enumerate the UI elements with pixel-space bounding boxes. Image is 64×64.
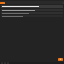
button[interactable] <box>1 5 63 8</box>
button[interactable] <box>1 9 63 11</box>
button[interactable] <box>1 12 63 14</box>
button[interactable] <box>1 15 63 17</box>
button[interactable]: Brand title <box>0 2 5 4</box>
button[interactable]: Create <box>58 58 63 61</box>
